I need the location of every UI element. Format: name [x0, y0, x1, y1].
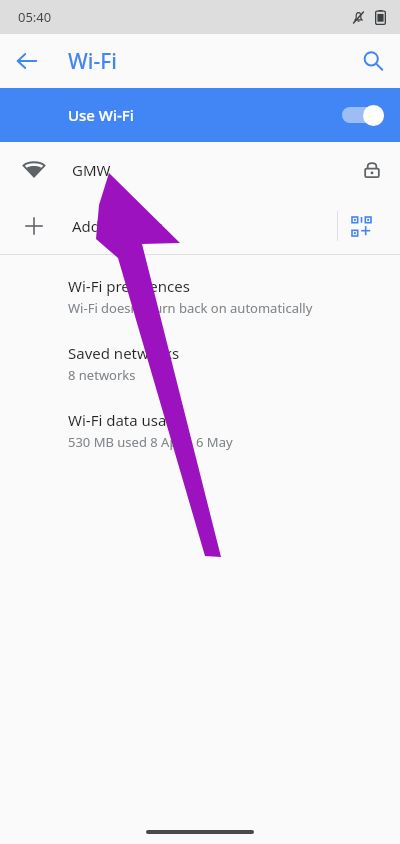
- staticText: Wi-Fi doesn't turn back on automatically: [68, 299, 313, 317]
- button[interactable]: GMW: [0, 142, 400, 198]
- button[interactable]: Scan QR code: [338, 203, 384, 249]
- button[interactable]: Saved networks: [0, 330, 400, 397]
- button[interactable]: Search: [346, 34, 400, 88]
- staticText: 05:40: [18, 8, 52, 26]
- button[interactable]: Wi-Fi preferences: [0, 263, 400, 330]
- staticText: Saved networks: [68, 343, 180, 363]
- staticText: 8 networks: [68, 366, 136, 384]
- staticText: Wi-Fi data usage: [68, 410, 185, 430]
- staticText: Wi-Fi preferences: [68, 276, 190, 296]
- staticText: Wi-Fi: [68, 47, 117, 76]
- button[interactable]: Add network: [0, 198, 400, 254]
- button[interactable]: Wi-Fi data usage: [0, 397, 400, 464]
- staticText: GMW: [72, 160, 111, 180]
- button[interactable]: Use Wi-Fi: [0, 88, 400, 142]
- staticText: Use Wi-Fi: [68, 105, 134, 125]
- staticText: Add network: [72, 216, 163, 236]
- button[interactable]: Back: [0, 34, 54, 88]
- staticText: 530 MB used 8 Apr – 6 May: [68, 433, 233, 451]
